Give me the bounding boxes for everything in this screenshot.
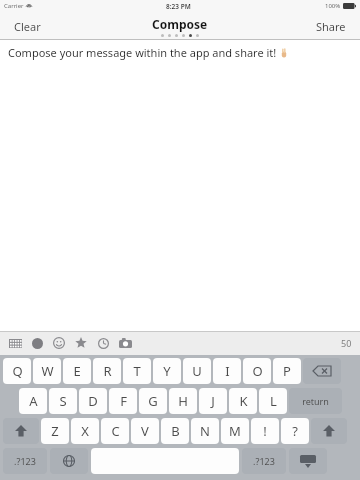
button[interactable]: Space [91, 448, 239, 474]
staticText: M [229, 422, 241, 440]
button[interactable]: .?123 [242, 448, 286, 474]
staticText: Clear [14, 19, 41, 34]
staticText: ? [292, 422, 298, 440]
button[interactable]: Camera [116, 334, 134, 352]
button[interactable]: Next keyboard [50, 448, 88, 474]
staticText: H [178, 392, 188, 410]
staticText: 100% [325, 2, 341, 10]
button[interactable]: T [123, 358, 151, 384]
staticText: P [283, 362, 291, 380]
staticText: Compose [152, 16, 208, 32]
button[interactable]: V [131, 418, 159, 444]
button[interactable]: Emoji [50, 334, 68, 352]
staticText: Q [12, 362, 23, 380]
button[interactable]: J [199, 388, 227, 414]
staticText: I [225, 362, 230, 380]
button[interactable]: Recents [94, 334, 112, 352]
button[interactable]: Backspace [303, 358, 341, 384]
staticText: 8:23 PM [166, 2, 191, 11]
button[interactable]: Hide keyboard [289, 448, 327, 474]
button[interactable]: Q [3, 358, 31, 384]
staticText: D [88, 392, 98, 410]
button[interactable]: X [71, 418, 99, 444]
button[interactable]: Z [41, 418, 69, 444]
staticText: R [103, 362, 112, 380]
button[interactable]: Y [153, 358, 181, 384]
button[interactable]: Share [312, 15, 350, 38]
button[interactable]: N [191, 418, 219, 444]
button[interactable]: .?123 [3, 448, 47, 474]
button[interactable]: D [79, 388, 107, 414]
button[interactable]: P [273, 358, 301, 384]
staticText: O [252, 362, 263, 380]
button[interactable]: Shift [311, 418, 347, 444]
staticText: Compose your message within the app and … [8, 45, 277, 60]
staticText: .?123 [253, 455, 275, 467]
staticText: Y [163, 362, 171, 380]
button[interactable]: E [63, 358, 91, 384]
staticText: G [148, 392, 158, 410]
button[interactable]: R [93, 358, 121, 384]
staticText: 50 [341, 337, 352, 349]
button[interactable]: F [109, 388, 137, 414]
staticText: T [133, 362, 141, 380]
button[interactable]: C [101, 418, 129, 444]
button[interactable]: B [161, 418, 189, 444]
button[interactable]: H [169, 388, 197, 414]
button[interactable]: S [49, 388, 77, 414]
staticText: Share [316, 19, 346, 34]
button[interactable]: K [229, 388, 257, 414]
button[interactable]: A [19, 388, 47, 414]
staticText: S [59, 392, 67, 410]
staticText: Carrier [4, 2, 24, 10]
staticText: ! [263, 422, 267, 440]
button[interactable]: ! [251, 418, 279, 444]
button[interactable]: Clear [10, 15, 45, 38]
staticText: L [270, 392, 277, 410]
staticText: N [200, 422, 210, 440]
button[interactable]: ? [281, 418, 309, 444]
button[interactable]: Keyboard [6, 334, 24, 352]
button[interactable]: W [33, 358, 61, 384]
staticText: K [239, 392, 248, 410]
staticText: F [120, 392, 127, 410]
staticText: .?123 [14, 455, 36, 467]
staticText: B [171, 422, 180, 440]
staticText: J [211, 392, 215, 410]
staticText: X [81, 422, 89, 440]
staticText: return [302, 395, 329, 407]
button[interactable]: L [259, 388, 287, 414]
button[interactable]: O [243, 358, 271, 384]
button[interactable]: return [289, 388, 342, 414]
staticText: Z [51, 422, 59, 440]
staticText: A [29, 392, 38, 410]
button[interactable]: Favorites [72, 334, 90, 352]
staticText: E [73, 362, 81, 380]
staticText: C [111, 422, 120, 440]
staticText: V [141, 422, 149, 440]
button[interactable]: G [139, 388, 167, 414]
button[interactable]: I [213, 358, 241, 384]
staticText: U [192, 362, 202, 380]
staticText: W [41, 362, 54, 380]
button[interactable]: U [183, 358, 211, 384]
button[interactable]: M [221, 418, 249, 444]
button[interactable]: Shift [3, 418, 39, 444]
button[interactable]: Record [28, 334, 46, 352]
